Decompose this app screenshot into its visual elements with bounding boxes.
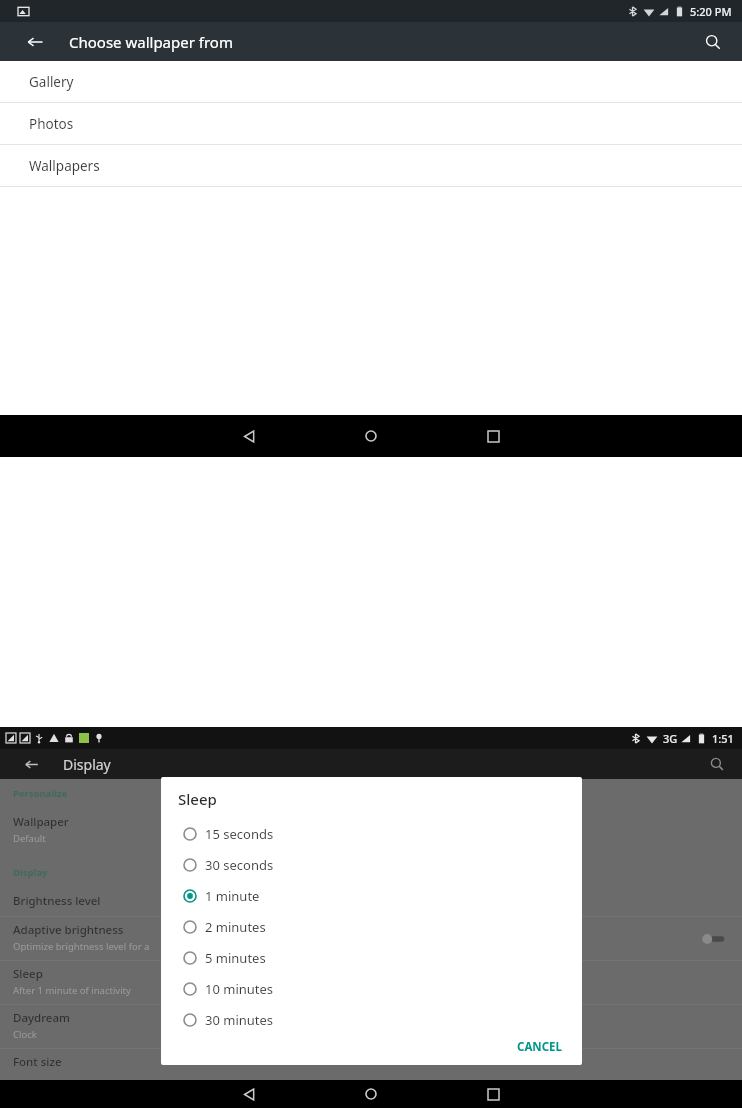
button[interactable]: 10 minutes xyxy=(161,973,582,1004)
button[interactable]: Recents xyxy=(480,1081,506,1107)
staticText: 30 minutes xyxy=(205,1011,274,1029)
staticText: Clock xyxy=(13,1028,37,1041)
staticText: Display xyxy=(13,866,48,879)
button[interactable]: Adaptive brightness xyxy=(0,917,742,960)
button[interactable]: Wallpapers xyxy=(0,145,742,187)
button[interactable]: Back xyxy=(18,751,44,777)
staticText: 30 seconds xyxy=(205,856,274,874)
staticText: 1:51 xyxy=(712,731,734,746)
button[interactable]: Home xyxy=(358,423,384,449)
button[interactable]: Home xyxy=(358,1081,384,1107)
staticText: Wallpaper xyxy=(13,814,69,830)
button[interactable]: 30 minutes xyxy=(161,1004,582,1035)
staticText: 5 minutes xyxy=(205,949,266,967)
staticText: Brightness level xyxy=(13,893,101,909)
staticText: 15 seconds xyxy=(205,825,274,843)
staticText: Wallpapers xyxy=(29,157,100,175)
staticText: 2 minutes xyxy=(205,918,266,936)
button[interactable]: Gallery xyxy=(0,61,742,103)
staticText: 10 minutes xyxy=(205,980,274,998)
button[interactable]: 30 seconds xyxy=(161,849,582,880)
button[interactable]: 5 minutes xyxy=(161,942,582,973)
staticText: 1 minute xyxy=(205,887,260,905)
staticText: Gallery xyxy=(29,73,74,91)
button[interactable]: Daydream xyxy=(0,1005,742,1048)
button[interactable]: 1 minute xyxy=(161,880,582,911)
staticText: Daydream xyxy=(13,1010,70,1026)
button[interactable]: Back xyxy=(20,27,50,57)
button[interactable]: Back xyxy=(236,423,262,449)
button[interactable]: Recents xyxy=(480,423,506,449)
button[interactable]: Photos xyxy=(0,103,742,145)
staticText: Default xyxy=(13,832,46,845)
button[interactable]: Search xyxy=(698,27,728,57)
staticText: CANCEL xyxy=(517,1039,562,1051)
button[interactable]: 15 seconds xyxy=(161,818,582,849)
staticText: Optimize brightness level for a xyxy=(13,940,150,953)
staticText: Sleep xyxy=(178,789,217,809)
button[interactable]: CANCEL xyxy=(513,1035,566,1055)
staticText: Photos xyxy=(29,115,74,133)
button[interactable]: Back xyxy=(236,1081,262,1107)
staticText: After 1 minute of inactivity xyxy=(13,984,131,997)
staticText: Choose wallpaper from xyxy=(69,32,233,52)
staticText: Sleep xyxy=(13,966,43,982)
staticText: Display xyxy=(63,755,111,774)
staticText: Personalize xyxy=(13,787,68,800)
staticText: 3G xyxy=(663,731,678,746)
button[interactable]: Wallpaper xyxy=(0,809,742,852)
button[interactable]: Brightness level xyxy=(0,888,742,916)
button[interactable]: Adaptive brightness toggle xyxy=(698,932,726,946)
button[interactable]: Font size xyxy=(0,1049,742,1080)
staticText: Font size xyxy=(13,1054,62,1070)
button[interactable]: 2 minutes xyxy=(161,911,582,942)
button[interactable]: Search xyxy=(704,751,730,777)
button[interactable]: Sleep xyxy=(0,961,742,1004)
staticText: 5:20 PM xyxy=(690,4,732,19)
staticText: Adaptive brightness xyxy=(13,922,124,938)
